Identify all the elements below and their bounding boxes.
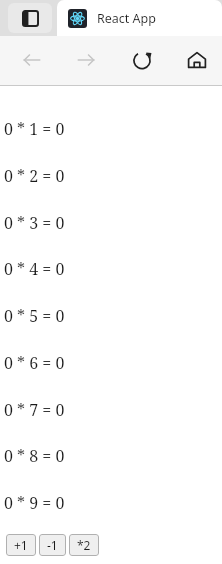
staticText: -1 xyxy=(47,537,58,553)
button[interactable]: Home xyxy=(179,43,215,77)
button[interactable]: -1 xyxy=(39,534,66,556)
button[interactable]: +1 xyxy=(6,534,36,556)
button[interactable]: Reload xyxy=(124,43,160,77)
staticText: 0 * 6 = 0 xyxy=(4,352,65,374)
staticText: 0 * 5 = 0 xyxy=(4,305,65,327)
staticText: +1 xyxy=(14,537,28,553)
staticText: 0 * 2 = 0 xyxy=(4,165,65,187)
staticText: 0 * 4 = 0 xyxy=(4,258,65,280)
staticText: React App xyxy=(97,10,156,27)
staticText: 0 * 1 = 0 xyxy=(4,118,65,140)
staticText: 0 * 3 = 0 xyxy=(4,212,65,234)
staticText: 0 * 7 = 0 xyxy=(4,399,65,421)
staticText: *2 xyxy=(77,537,91,553)
button[interactable]: Back xyxy=(14,43,50,77)
button[interactable]: Forward xyxy=(68,43,104,77)
button[interactable]: Tab actions xyxy=(8,3,52,33)
button[interactable]: React App xyxy=(57,0,222,36)
staticText: 0 * 9 = 0 xyxy=(4,492,65,514)
staticText: 0 * 8 = 0 xyxy=(4,445,65,467)
button[interactable]: *2 xyxy=(69,534,99,556)
